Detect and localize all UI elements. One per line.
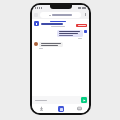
button[interactable] bbox=[39, 42, 63, 47]
button[interactable] bbox=[40, 12, 81, 18]
button[interactable]: Menu bbox=[83, 13, 87, 17]
button[interactable]: Send bbox=[81, 97, 87, 103]
button[interactable]: Chat bbox=[51, 104, 70, 113]
button[interactable] bbox=[34, 98, 79, 103]
button[interactable] bbox=[57, 30, 83, 37]
button[interactable]: Action bbox=[76, 24, 87, 27]
button[interactable]: Gallery bbox=[70, 104, 89, 113]
button[interactable]: Brand logo bbox=[34, 21, 39, 26]
button[interactable]: Downloads bbox=[32, 104, 51, 113]
